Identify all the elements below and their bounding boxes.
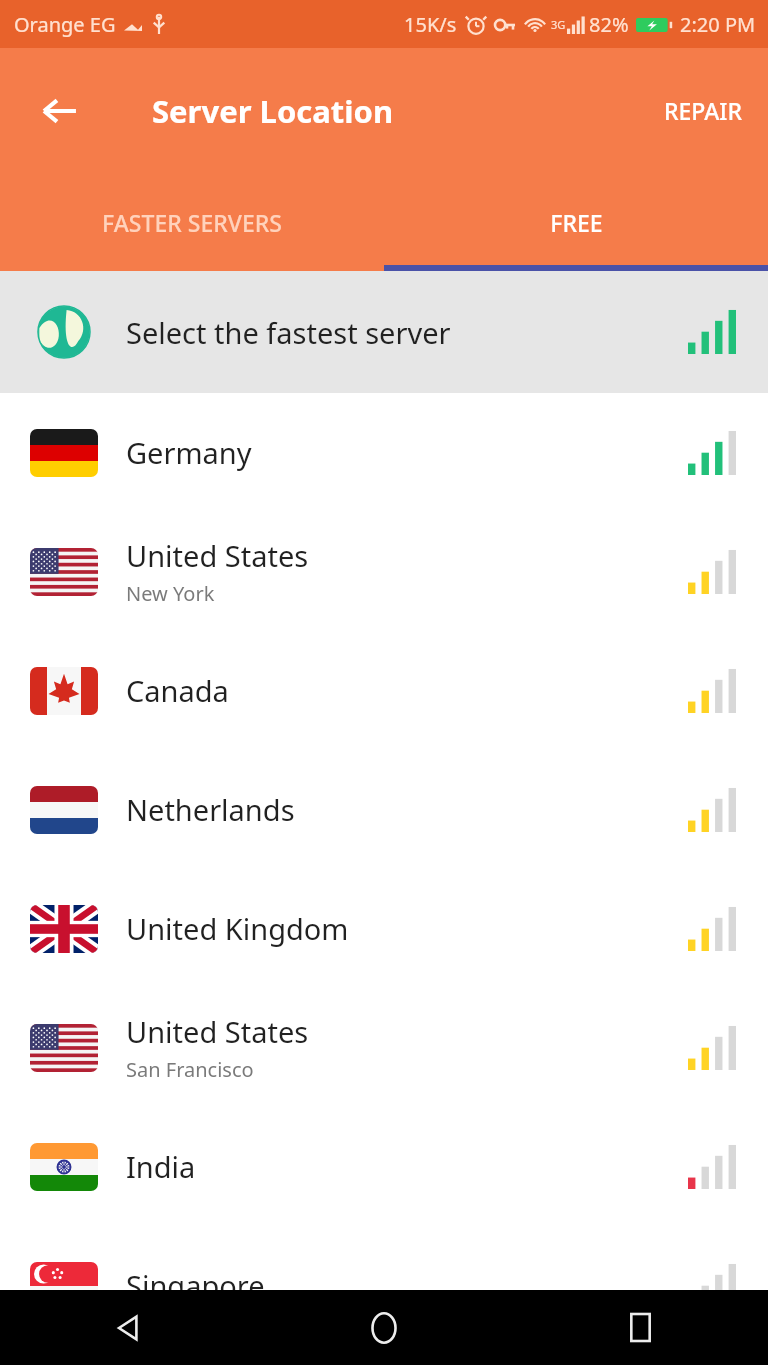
staticText: REPAIR	[664, 95, 742, 126]
button[interactable]: FREE	[384, 173, 768, 271]
staticText: Singapore	[126, 1266, 265, 1305]
staticText: Canada	[126, 671, 229, 710]
button[interactable]: United States	[0, 512, 768, 631]
staticText: 2:20 PM	[680, 11, 756, 38]
staticText: 82%	[589, 11, 629, 38]
staticText: FREE	[550, 207, 603, 238]
staticText: FASTER SERVERS	[102, 207, 282, 238]
button[interactable]: Back	[26, 77, 94, 145]
staticText: Server Location	[152, 90, 394, 132]
button[interactable]: Recent apps	[512, 1290, 768, 1365]
staticText: Germany	[126, 433, 252, 472]
button[interactable]: Singapore	[0, 1226, 768, 1345]
button[interactable]: FASTER SERVERS	[0, 173, 384, 271]
button[interactable]: Select the fastest server	[0, 271, 768, 393]
staticText: India	[126, 1147, 196, 1186]
button[interactable]: Germany	[0, 393, 768, 512]
button[interactable]: India	[0, 1107, 768, 1226]
staticText: New York	[126, 580, 215, 607]
button[interactable]: United States	[0, 988, 768, 1107]
button[interactable]: United Kingdom	[0, 869, 768, 988]
staticText: 3G	[551, 17, 566, 32]
staticText: Netherlands	[126, 790, 295, 829]
staticText: United States	[126, 536, 309, 575]
button[interactable]: Canada	[0, 631, 768, 750]
staticText: 15K/s	[404, 11, 457, 38]
staticText: San Francisco	[126, 1056, 254, 1083]
staticText: United States	[126, 1012, 309, 1051]
staticText: Orange EG	[14, 11, 116, 38]
button[interactable]: Netherlands	[0, 750, 768, 869]
staticText: United Kingdom	[126, 909, 349, 948]
button[interactable]: Home	[256, 1290, 512, 1365]
staticText: Select the fastest server	[126, 313, 451, 352]
button[interactable]: REPAIR	[648, 85, 758, 136]
button[interactable]: Back	[0, 1290, 256, 1365]
